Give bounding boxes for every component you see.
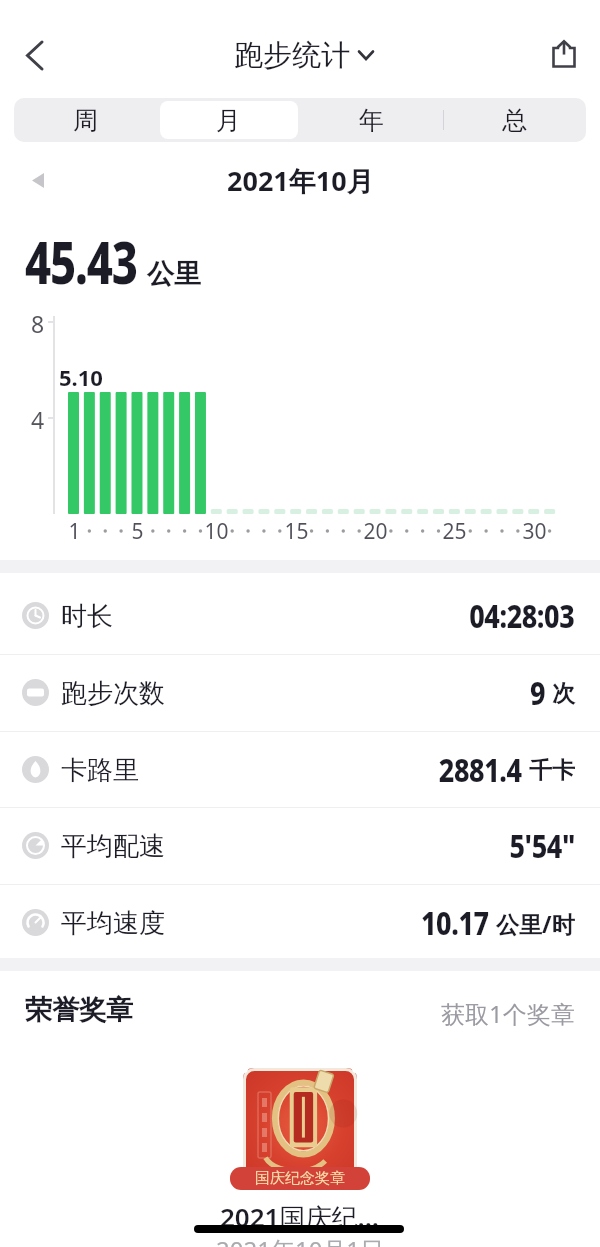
staticText: 20 — [363, 517, 388, 546]
button[interactable]: 年 — [300, 98, 443, 142]
button[interactable]: 平均配速 — [0, 807, 600, 884]
staticText: 荣誉奖章 — [25, 993, 133, 1027]
staticText: 获取1个奖章 — [441, 997, 575, 1030]
staticText: 卡路里 — [61, 754, 139, 787]
staticText: 15 — [284, 517, 309, 546]
staticText: 9 — [530, 671, 545, 715]
staticText: 2021年10月 — [227, 162, 374, 199]
staticText: 8 — [31, 308, 45, 339]
staticText: 总 — [502, 105, 527, 136]
staticText: 公里 — [147, 257, 201, 291]
button[interactable] — [243, 1068, 357, 1188]
staticText: 平均速度 — [61, 907, 165, 940]
staticText: 30 — [522, 517, 547, 546]
staticText: 2881.4 — [439, 748, 522, 792]
button[interactable] — [20, 160, 56, 200]
staticText: 月 — [216, 105, 241, 136]
staticText: 跑步次数 — [61, 677, 165, 710]
button[interactable]: 时长 — [0, 577, 600, 654]
staticText: 2021年10月1日 — [216, 1233, 385, 1247]
staticText: 10.17 — [421, 901, 489, 945]
staticText: 04:28:03 — [469, 594, 575, 638]
staticText: 次 — [552, 679, 575, 708]
staticText: 45.43 — [25, 222, 137, 301]
button[interactable]: 月 — [157, 98, 300, 142]
staticText: 4 — [31, 404, 45, 435]
button[interactable]: 获取1个奖章 — [441, 997, 575, 1030]
staticText: 公里/时 — [496, 908, 575, 939]
staticText: 时长 — [61, 600, 113, 633]
button[interactable]: 卡路里 — [0, 731, 600, 808]
staticText: 平均配速 — [61, 830, 165, 863]
button[interactable]: 2021国庆纪... — [220, 1199, 380, 1235]
button[interactable] — [542, 32, 586, 76]
staticText: 5 — [131, 517, 144, 546]
staticText: 跑步统计 — [234, 37, 350, 74]
button[interactable]: 跑步次数 — [0, 654, 600, 731]
button[interactable]: 总 — [443, 98, 586, 142]
staticText: 25 — [442, 517, 467, 546]
staticText: 年 — [359, 105, 384, 136]
staticText: 1 — [68, 517, 81, 546]
staticText: 周 — [73, 105, 98, 136]
staticText: 10 — [204, 517, 229, 546]
button[interactable]: 跑步统计 — [234, 37, 373, 74]
button[interactable] — [14, 35, 54, 75]
staticText: 千卡 — [529, 756, 575, 785]
staticText: 5'54" — [509, 824, 575, 868]
staticText: 国庆纪念奖章 — [255, 1169, 345, 1188]
staticText: 5.10 — [59, 362, 103, 392]
button[interactable]: 周 — [14, 98, 157, 142]
button[interactable]: 平均速度 — [0, 884, 600, 961]
